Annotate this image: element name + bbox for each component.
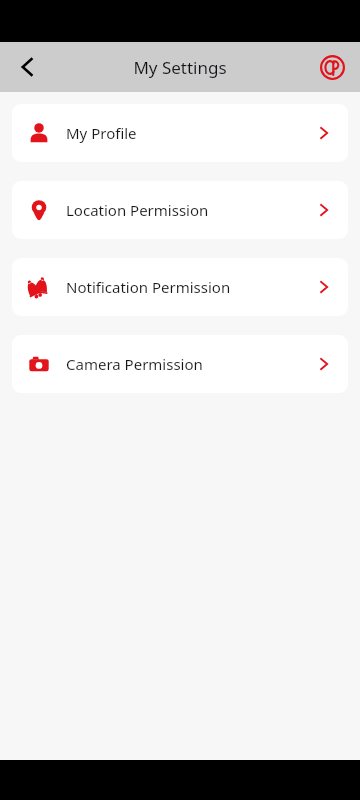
button[interactable]: Notification Permission — [12, 258, 348, 316]
button[interactable]: Location Permission — [12, 181, 348, 239]
button[interactable]: App logo — [312, 47, 352, 87]
button[interactable]: Back — [6, 45, 50, 89]
staticText: Camera Permission — [66, 354, 316, 374]
button[interactable]: My Profile — [12, 104, 348, 162]
staticText: Location Permission — [66, 200, 316, 220]
staticText: Notification Permission — [66, 277, 316, 297]
staticText: My Settings — [133, 56, 227, 79]
staticText: My Profile — [66, 123, 316, 143]
button[interactable]: Camera Permission — [12, 335, 348, 393]
